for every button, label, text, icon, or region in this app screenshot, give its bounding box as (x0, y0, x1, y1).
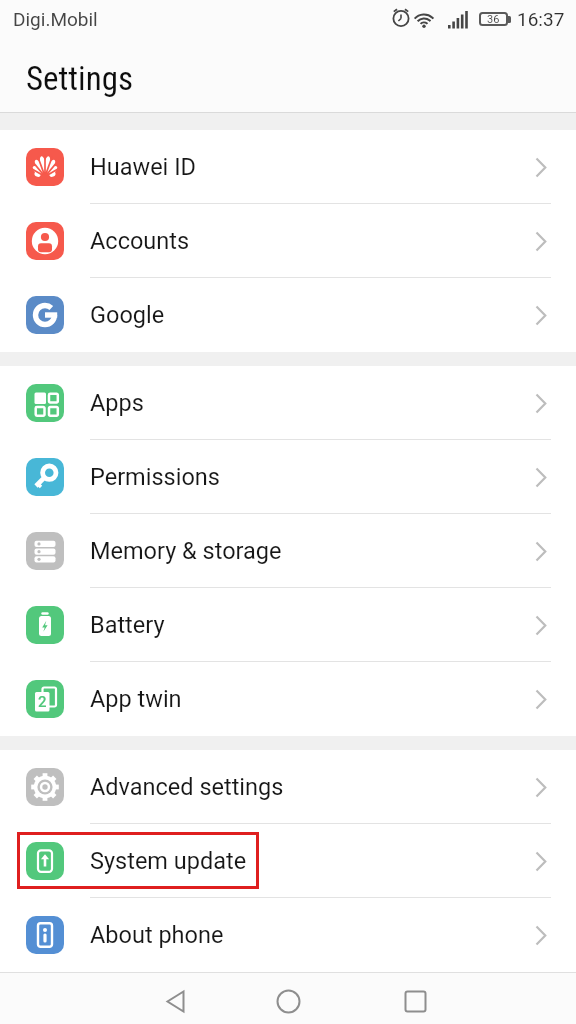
staticText: Huawei ID (90, 153, 196, 181)
staticText: App twin (90, 685, 182, 713)
staticText: Battery (90, 611, 165, 639)
button[interactable]: Advanced settings (0, 750, 576, 824)
staticText: Advanced settings (90, 773, 284, 801)
button[interactable]: 2 (0, 662, 576, 736)
button[interactable]: Accounts (0, 204, 576, 278)
button[interactable]: Huawei ID (0, 130, 576, 204)
staticText: System update (90, 847, 247, 875)
staticText: 16:37 (517, 8, 565, 30)
button[interactable] (404, 990, 427, 1013)
staticText: Permissions (90, 463, 220, 491)
button[interactable]: Battery (0, 588, 576, 662)
button[interactable]: Apps (0, 366, 576, 440)
staticText: Apps (90, 389, 144, 417)
staticText: Google (90, 301, 165, 329)
button[interactable]: About phone (0, 898, 576, 972)
staticText: Digi.Mobil (13, 8, 98, 30)
button[interactable]: System update (0, 824, 576, 898)
button[interactable] (276, 989, 301, 1014)
button[interactable]: Google (0, 278, 576, 352)
button[interactable]: Memory & storage (0, 514, 576, 588)
staticText: About phone (90, 921, 224, 949)
staticText: 2 (38, 693, 47, 711)
staticText: Memory & storage (90, 537, 282, 565)
staticText: 36 (487, 13, 500, 26)
button[interactable] (164, 989, 187, 1014)
button[interactable]: Permissions (0, 440, 576, 514)
staticText: Settings (26, 59, 133, 98)
staticText: Accounts (90, 227, 190, 255)
